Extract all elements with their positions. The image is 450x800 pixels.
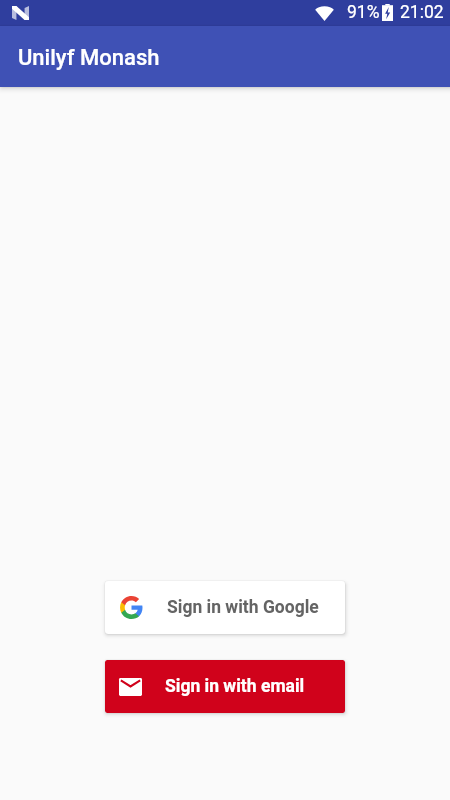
button[interactable]: Sign in with Google bbox=[105, 581, 345, 634]
staticText: Sign in with Google bbox=[167, 597, 319, 618]
button[interactable]: Sign in with email bbox=[105, 660, 345, 713]
staticText: Unilyf Monash bbox=[18, 45, 160, 71]
staticText: Sign in with email bbox=[165, 676, 305, 697]
staticText: 21:02 bbox=[400, 2, 444, 23]
staticText: 91% bbox=[347, 2, 380, 23]
